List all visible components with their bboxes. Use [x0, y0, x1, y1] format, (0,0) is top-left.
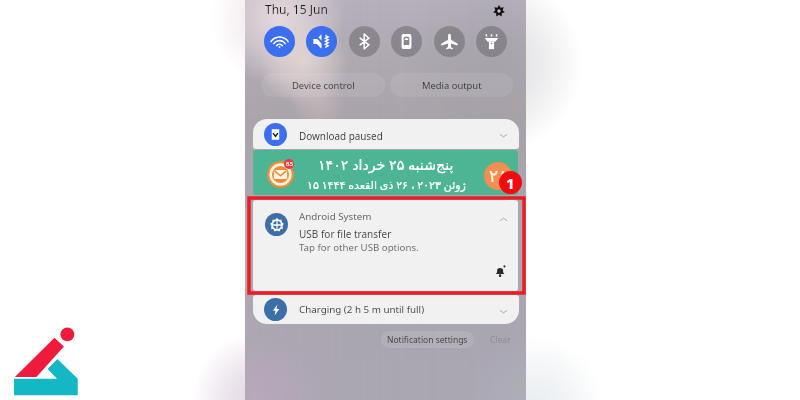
button[interactable]: Flashlight — [476, 26, 507, 57]
staticText: Notification settings — [387, 334, 468, 346]
staticText: Charging (2 h 5 m until full) — [299, 303, 425, 316]
staticText: Download paused — [299, 129, 383, 142]
staticText: 65 — [286, 160, 293, 168]
button[interactable]: Secure lock — [391, 26, 422, 57]
staticText: 1 — [506, 173, 515, 193]
button[interactable]: Airplane mode — [434, 26, 465, 57]
button[interactable]: Device control — [261, 73, 385, 97]
staticText: Media output — [422, 79, 482, 92]
button[interactable]: Media output — [390, 73, 513, 97]
button[interactable]: Bluetooth — [349, 26, 380, 57]
button[interactable]: 65 — [253, 150, 518, 195]
button[interactable]: Notification settings — [381, 331, 474, 348]
staticText: Android System — [299, 210, 372, 223]
button[interactable]: Android System — [253, 200, 518, 291]
button[interactable]: Download paused — [253, 119, 519, 149]
staticText: Tap for other USB options. — [299, 241, 419, 254]
button[interactable]: Silence notifications — [491, 262, 509, 280]
staticText: USB for file transfer — [299, 227, 392, 241]
staticText: Clear — [490, 334, 511, 346]
staticText: ۲۸ — [489, 166, 508, 186]
button[interactable]: Charging (2 h 5 m until full) — [253, 295, 519, 324]
staticText: Thu, 15 Jun — [265, 1, 328, 17]
button[interactable]: Settings — [490, 2, 507, 19]
staticText: Device control — [292, 79, 355, 92]
staticText: پنج‌شنبه ۲۵ خرداد ۱۴۰۲ — [318, 155, 454, 174]
button[interactable]: Clear — [488, 331, 512, 348]
staticText: ۱۵ ژوئن ۲۰۲۳ ، ۲۶ ذی القعده ۱۴۴۴ — [307, 177, 466, 192]
button[interactable]: Wi-Fi — [264, 26, 295, 57]
button[interactable]: Mute — [306, 26, 337, 57]
